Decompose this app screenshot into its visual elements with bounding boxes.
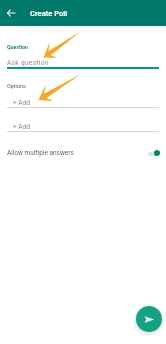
staticText: Question — [7, 44, 28, 50]
staticText: Allow multiple answers — [7, 149, 74, 157]
button[interactable]: Back — [0, 0, 21, 26]
staticText: Ask question — [7, 59, 49, 67]
button[interactable]: + Add — [0, 123, 166, 135]
button[interactable]: + Add — [0, 99, 166, 111]
button[interactable]: Allow multiple answers — [7, 145, 160, 161]
staticText: Options — [7, 83, 26, 89]
staticText: + Add — [13, 123, 30, 131]
staticText: Create Poll — [30, 9, 68, 18]
button[interactable]: Ask question — [0, 59, 166, 71]
button[interactable]: Send — [136, 306, 162, 332]
staticText: + Add — [13, 99, 30, 107]
